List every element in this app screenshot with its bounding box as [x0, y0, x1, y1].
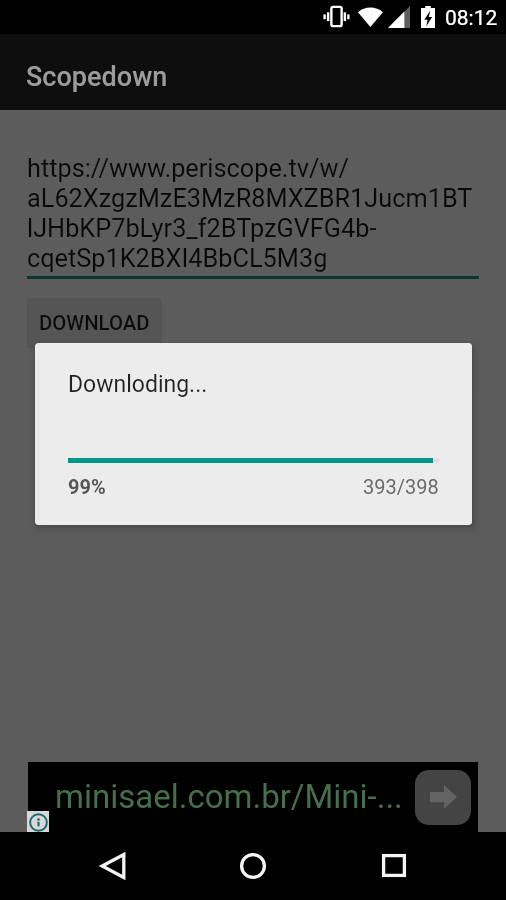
button[interactable]: Recents: [370, 842, 417, 889]
button[interactable]: Ad info: [27, 811, 49, 833]
button[interactable]: DOWNLOAD: [27, 298, 162, 348]
staticText: Downloding...: [68, 371, 208, 398]
button[interactable]: Home: [229, 842, 276, 889]
staticText: Scopedown: [26, 61, 168, 93]
staticText: 08:12: [445, 6, 498, 31]
staticText: 99%: [68, 475, 106, 498]
button[interactable]: Back: [89, 842, 136, 889]
staticText: DOWNLOAD: [39, 311, 150, 335]
staticText: minisael.com.br/Mini-...: [55, 777, 403, 816]
staticText: https://www.periscope.tv/w/ aL62XzgzMzE3…: [27, 154, 473, 274]
button[interactable]: Advertisement: [28, 762, 478, 832]
staticText: 393/398: [363, 475, 439, 498]
button[interactable]: Open ad: [415, 770, 471, 825]
